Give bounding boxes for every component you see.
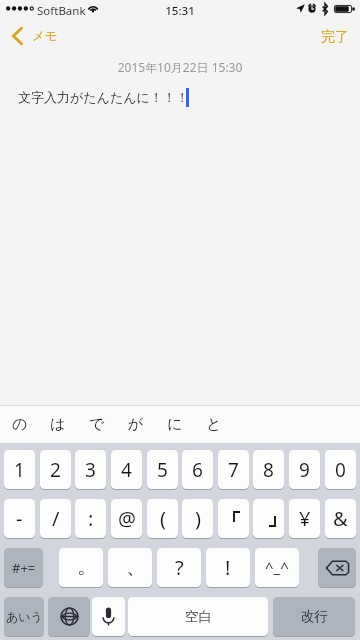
button[interactable]: あいう	[4, 597, 44, 636]
button[interactable]: 3	[75, 450, 106, 489]
staticText: :	[88, 505, 94, 532]
staticText: 9	[299, 457, 310, 483]
staticText: ?	[175, 554, 184, 581]
staticText: 2015年10月22日 15:30	[0, 59, 360, 75]
staticText: 7	[228, 457, 239, 483]
button[interactable]: と	[206, 406, 245, 443]
button[interactable]: #+=	[4, 548, 43, 587]
button[interactable]: /	[40, 499, 71, 538]
staticText: は	[50, 415, 66, 434]
staticText: の	[12, 415, 28, 434]
staticText: 空白	[185, 608, 212, 625]
button[interactable]: 6	[182, 450, 213, 489]
button[interactable]: メモ	[6, 25, 66, 47]
staticText: が	[128, 415, 144, 434]
button[interactable]: ¥	[289, 499, 320, 538]
button[interactable]: )	[182, 499, 213, 538]
staticText: 文字入力がたんたんに！！！	[18, 89, 189, 105]
staticText: と	[206, 415, 222, 434]
staticText: &	[333, 505, 348, 532]
staticText: メモ	[32, 28, 58, 44]
button[interactable]: に	[167, 406, 206, 443]
staticText: で	[89, 415, 105, 434]
button[interactable]: の	[12, 406, 51, 443]
staticText: -	[16, 505, 23, 532]
button[interactable]: 。	[59, 548, 103, 587]
staticText: @	[118, 505, 136, 532]
staticText: 4	[121, 457, 132, 483]
button[interactable]: Switch keyboard	[48, 597, 90, 636]
staticText: )	[195, 505, 201, 532]
staticText: 6	[192, 457, 203, 483]
button[interactable]: Closing bracket	[253, 499, 284, 538]
staticText: ^_^	[265, 557, 289, 577]
staticText: 完了	[321, 28, 349, 46]
staticText: 。	[77, 554, 97, 579]
staticText: 、	[126, 554, 146, 579]
button[interactable]: 8	[253, 450, 284, 489]
staticText: 5	[157, 457, 168, 483]
staticText: に	[167, 415, 183, 434]
button[interactable]: 、	[108, 548, 152, 587]
staticText: !	[225, 554, 231, 581]
button[interactable]: で	[89, 406, 128, 443]
staticText: 1	[14, 457, 25, 483]
button[interactable]: 7	[218, 450, 249, 489]
staticText: 15:31	[0, 3, 360, 19]
staticText: 2	[50, 457, 61, 483]
button[interactable]: は	[50, 406, 89, 443]
button[interactable]: ?	[157, 548, 201, 587]
button[interactable]: :	[75, 499, 106, 538]
staticText: 0	[335, 457, 346, 483]
staticText: 改行	[301, 608, 328, 625]
button[interactable]: 完了	[309, 27, 360, 47]
button[interactable]: Dictation	[92, 597, 125, 636]
button[interactable]: -	[4, 499, 35, 538]
button[interactable]: !	[206, 548, 250, 587]
button[interactable]: 2	[40, 450, 71, 489]
button[interactable]: 9	[289, 450, 320, 489]
button[interactable]: 5	[147, 450, 178, 489]
button[interactable]: 4	[111, 450, 142, 489]
staticText: ¥	[299, 505, 311, 532]
staticText: 8	[263, 457, 274, 483]
button[interactable]: 改行	[273, 597, 355, 636]
button[interactable]: ^_^	[255, 548, 299, 587]
button[interactable]: Delete	[318, 548, 356, 587]
button[interactable]: 1	[4, 450, 35, 489]
staticText: あいう	[6, 609, 43, 624]
staticText: /	[52, 505, 60, 532]
button[interactable]: (	[147, 499, 178, 538]
staticText: #+=	[12, 559, 36, 577]
button[interactable]: が	[128, 406, 167, 443]
button[interactable]: 空白	[128, 597, 268, 636]
staticText: (	[160, 505, 166, 532]
staticText: SoftBank	[37, 3, 86, 19]
staticText: 3	[85, 457, 96, 483]
button[interactable]: 0	[325, 450, 356, 489]
button[interactable]: &	[325, 499, 356, 538]
button[interactable]: Opening bracket	[218, 499, 249, 538]
button[interactable]: @	[111, 499, 142, 538]
